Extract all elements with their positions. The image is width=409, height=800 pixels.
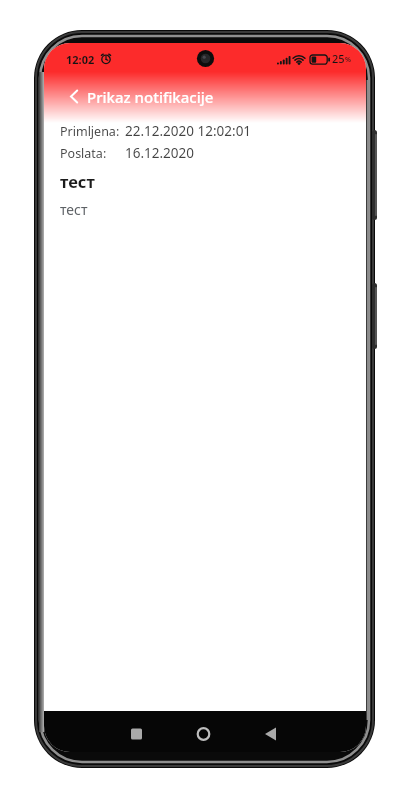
staticText: Poslata: [60,145,107,162]
staticText: 12:02 [66,52,95,67]
staticText: 22.12.2020 12:02:01 [125,122,252,140]
staticText: 16.12.2020 [125,144,195,162]
staticText: Prikaz notifikacije [87,87,214,107]
staticText: тест [60,200,88,219]
staticText: тест [60,170,95,192]
staticText: Primljena: [60,123,120,140]
staticText: 25 [332,51,345,66]
staticText: % [345,55,351,65]
